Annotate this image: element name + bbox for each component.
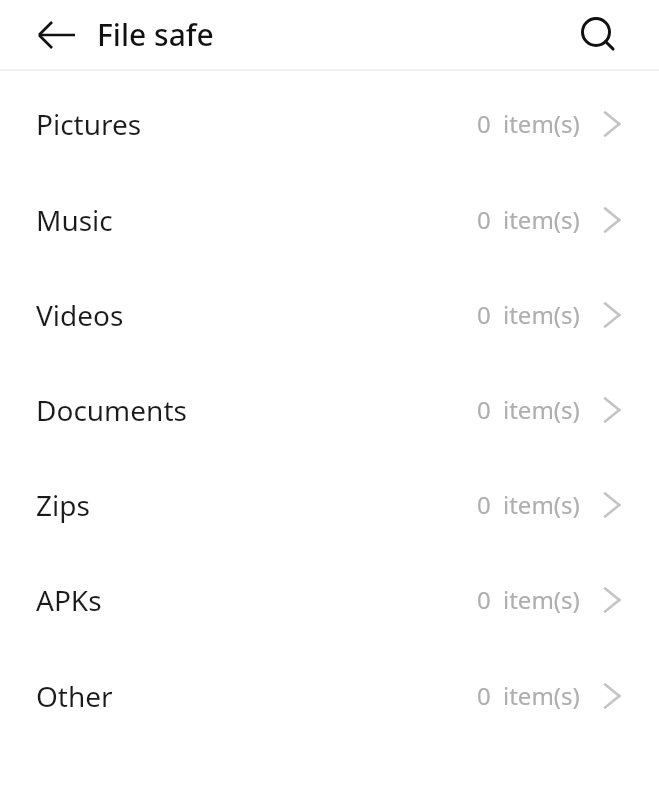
button[interactable]: APKs	[0, 552, 659, 647]
staticText: item(s)	[503, 298, 580, 331]
button[interactable]: Back	[20, 11, 76, 59]
button[interactable]: Search	[570, 9, 622, 61]
staticText: item(s)	[503, 203, 580, 236]
staticText: APKs	[36, 581, 102, 619]
staticText: 0	[477, 203, 491, 236]
staticText: 0	[477, 679, 491, 712]
staticText: Zips	[36, 486, 90, 524]
staticText: item(s)	[503, 393, 580, 426]
staticText: Videos	[36, 296, 124, 334]
button[interactable]: Other	[0, 648, 659, 743]
button[interactable]: Zips	[0, 457, 659, 552]
staticText: Music	[36, 201, 113, 239]
staticText: 0	[477, 488, 491, 521]
staticText: Other	[36, 677, 113, 715]
staticText: 0	[477, 393, 491, 426]
staticText: 0	[477, 583, 491, 616]
staticText: 0	[477, 298, 491, 331]
staticText: File safe	[97, 14, 214, 55]
button[interactable]: Videos	[0, 267, 659, 362]
staticText: item(s)	[503, 583, 580, 616]
button[interactable]: Music	[0, 172, 659, 267]
staticText: item(s)	[503, 679, 580, 712]
staticText: Documents	[36, 391, 187, 429]
button[interactable]: Documents	[0, 362, 659, 457]
button[interactable]: Pictures	[0, 76, 659, 171]
staticText: Pictures	[36, 105, 142, 143]
staticText: item(s)	[503, 488, 580, 521]
staticText: 0	[477, 107, 491, 140]
staticText: item(s)	[503, 107, 580, 140]
